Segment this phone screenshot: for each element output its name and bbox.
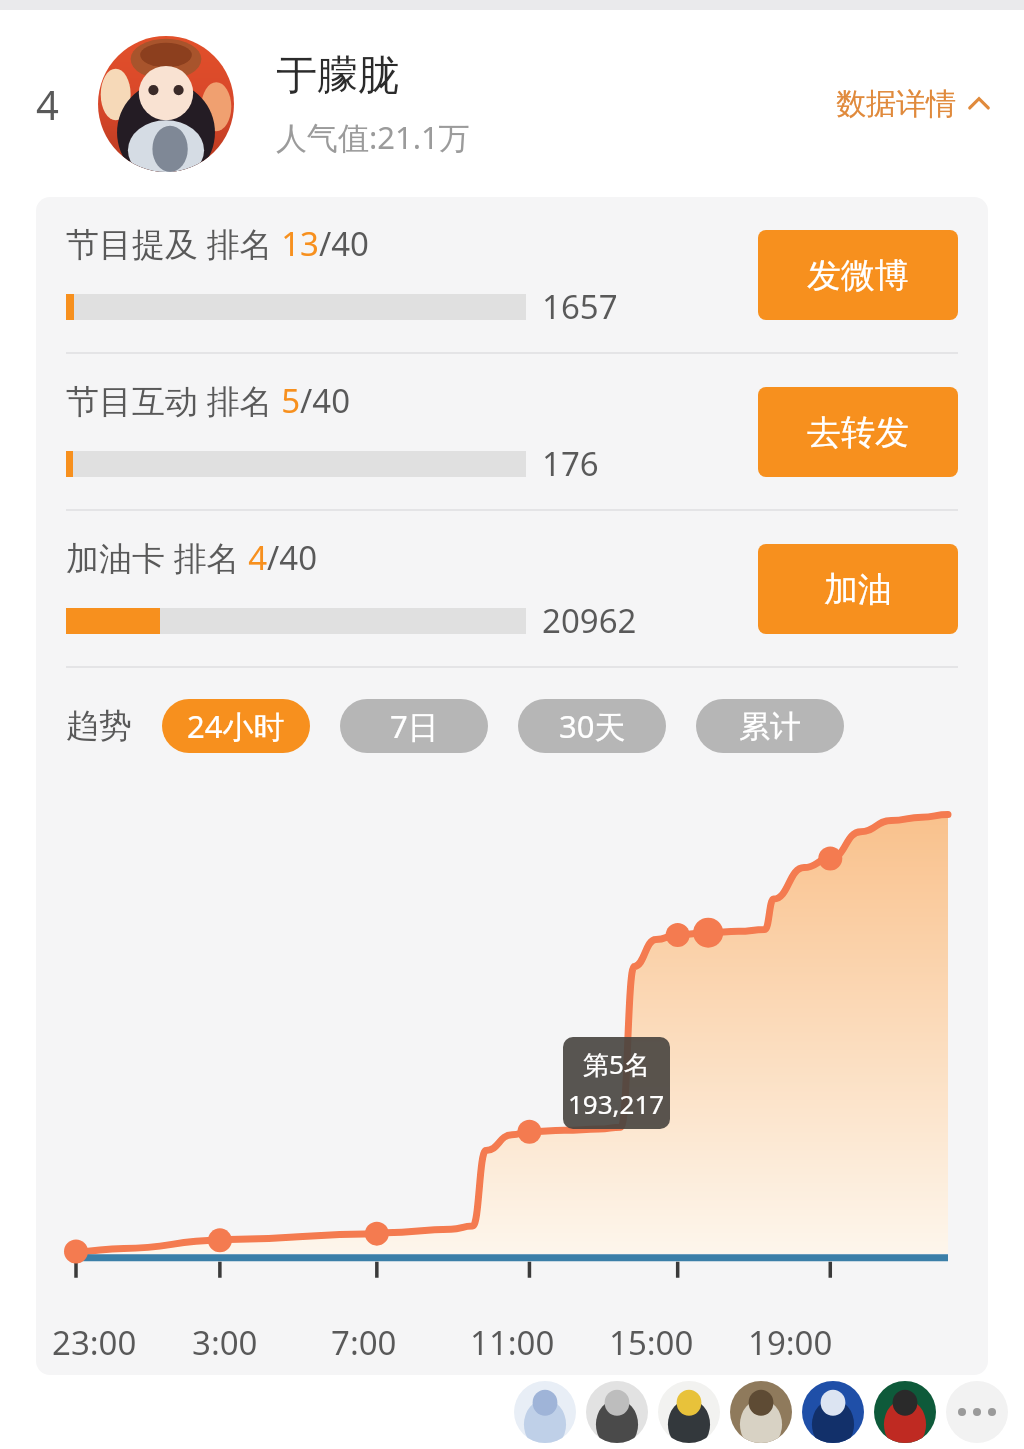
button[interactable]: 加油 — [758, 544, 958, 634]
staticText: 节目互动 排名 5/40 — [66, 378, 351, 423]
staticText: 加油卡 排名 4/40 — [66, 535, 318, 580]
staticText: 3:00 — [192, 1320, 258, 1365]
staticText: 11:00 — [470, 1320, 555, 1365]
staticText: 7:00 — [331, 1320, 397, 1365]
staticText: 23:00 — [52, 1320, 137, 1365]
staticText: 加油 — [824, 568, 892, 611]
button[interactable]: Fan avatar — [872, 1379, 938, 1445]
button[interactable]: Fan avatar — [512, 1379, 578, 1445]
button[interactable]: Fan avatar — [800, 1379, 866, 1445]
button[interactable]: 发微博 — [758, 230, 958, 320]
button[interactable]: 30天 — [518, 699, 666, 753]
staticText: 人气值:21.1万 — [276, 116, 470, 158]
staticText: 193,217 — [568, 1086, 665, 1121]
button[interactable]: 数据详情 — [822, 75, 1004, 133]
button[interactable]: Fan avatar — [656, 1379, 722, 1445]
staticText: 1657 — [542, 284, 618, 329]
staticText: 7日 — [390, 705, 439, 747]
button[interactable]: 24小时 — [162, 699, 310, 753]
button[interactable]: 去转发 — [758, 387, 958, 477]
staticText: 20962 — [542, 598, 637, 643]
staticText: 数据详情 — [836, 85, 956, 123]
staticText: 24小时 — [187, 705, 285, 747]
button[interactable]: 累计 — [696, 699, 844, 753]
button[interactable]: Fan avatar — [728, 1379, 794, 1445]
staticText: 去转发 — [807, 411, 909, 454]
button[interactable]: More fans — [944, 1379, 1010, 1445]
staticText: 节目提及 排名 13/40 — [66, 221, 369, 266]
staticText: 30天 — [559, 705, 626, 747]
staticText: 于朦胧 — [276, 50, 399, 102]
staticText: 发微博 — [807, 254, 909, 297]
staticText: 15:00 — [609, 1320, 694, 1365]
staticText: 176 — [542, 441, 599, 486]
staticText: 4 — [36, 77, 59, 131]
staticText: 趋势 — [66, 705, 132, 747]
staticText: 19:00 — [748, 1320, 833, 1365]
staticText: 第5名 — [583, 1046, 650, 1082]
button[interactable]: 7日 — [340, 699, 488, 753]
button[interactable]: Fan avatar — [584, 1379, 650, 1445]
staticText: 累计 — [739, 707, 801, 746]
